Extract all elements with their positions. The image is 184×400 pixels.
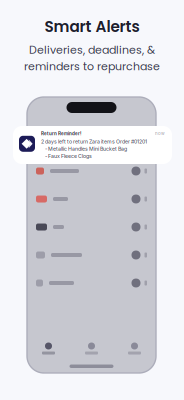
- button[interactable]: Alerts: [70, 339, 113, 357]
- staticText: 2 days left to return Zara items Order #…: [41, 138, 147, 145]
- button[interactable]: Orders: [27, 339, 70, 357]
- staticText: reminders to repurchase: [24, 59, 160, 74]
- staticText: Smart Alerts: [44, 16, 139, 37]
- staticText: now: [155, 131, 165, 136]
- staticText: Deliveries, deadlines, &: [29, 42, 155, 58]
- button[interactable]: Profile: [113, 339, 156, 357]
- staticText: - Faux Fleece Clogs: [41, 153, 92, 159]
- staticText: - Metallic Handles Mini Bucket Bag: [41, 146, 127, 152]
- button[interactable]: Return Reminder!: [13, 126, 172, 164]
- staticText: Return Reminder!: [41, 131, 81, 136]
